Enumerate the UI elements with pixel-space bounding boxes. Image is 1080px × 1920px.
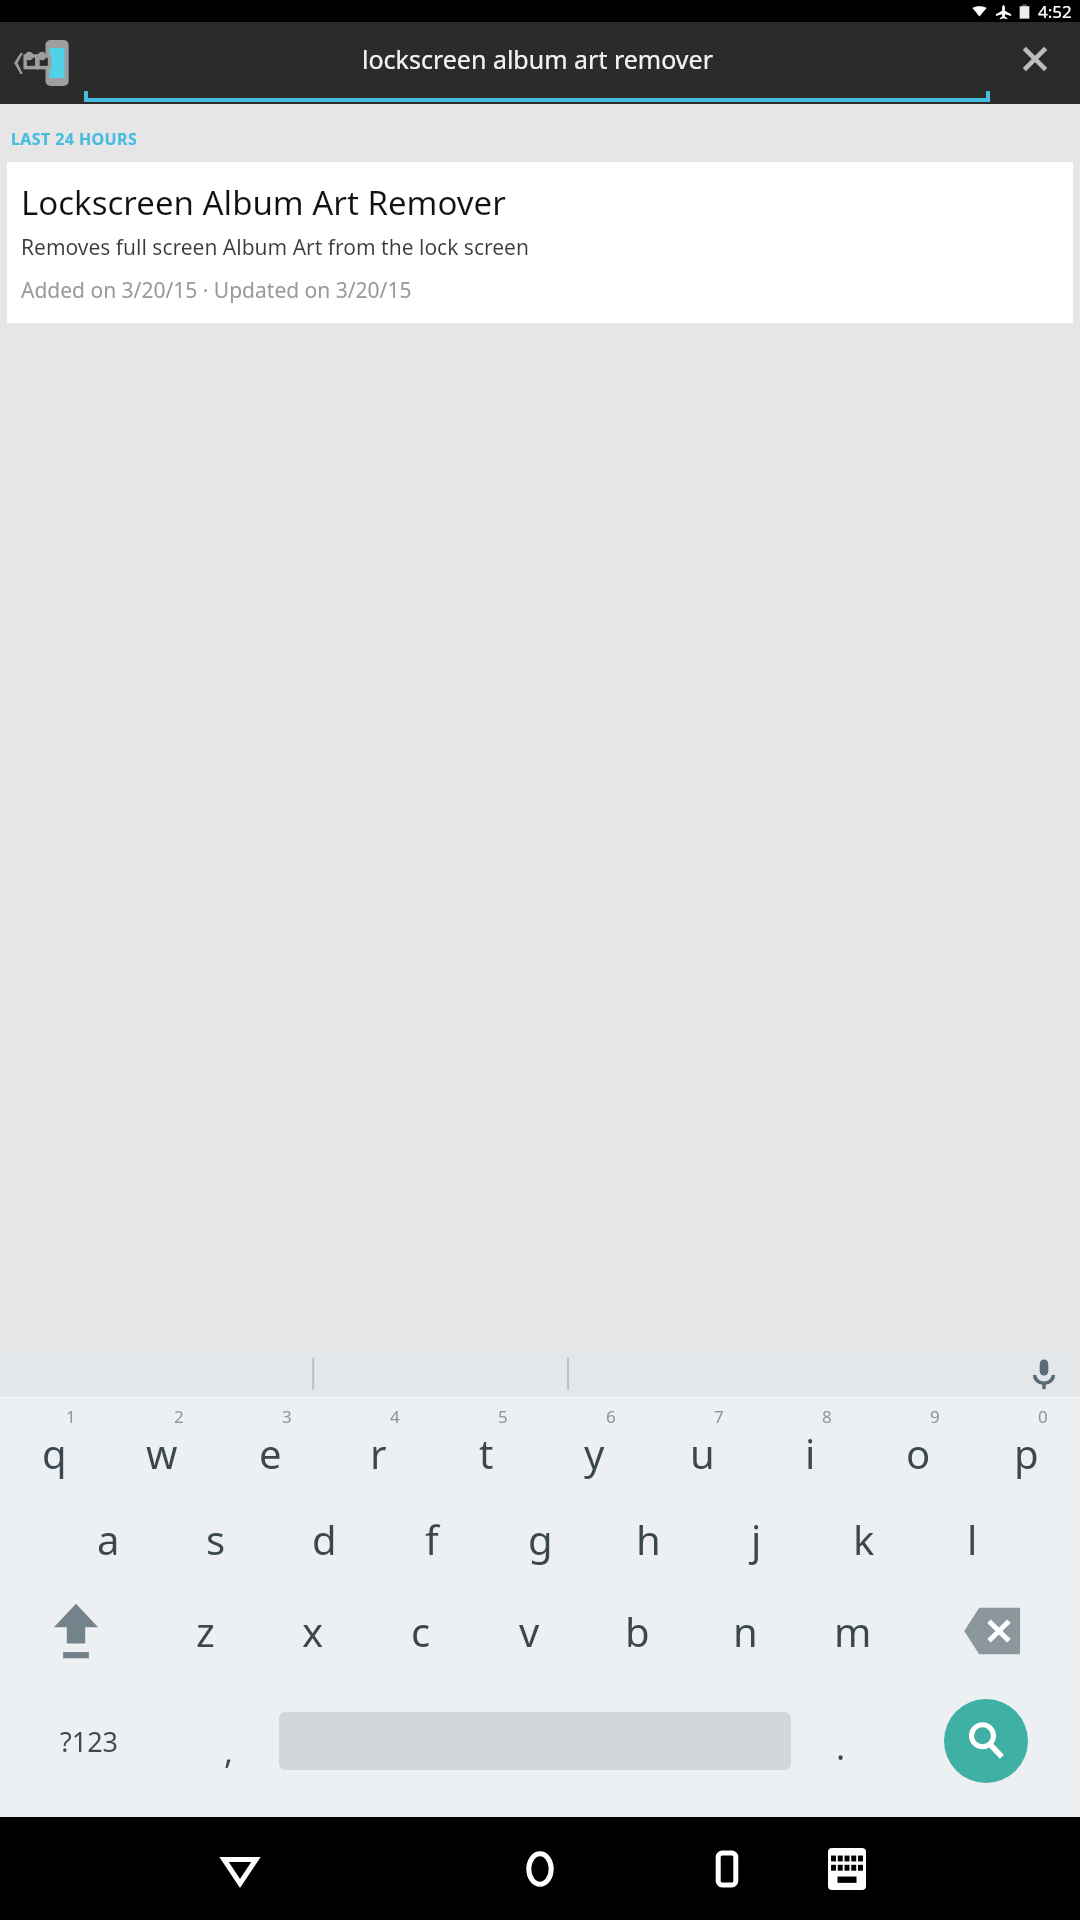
staticText: 7 [714, 1405, 724, 1428]
button[interactable]: Space [279, 1677, 791, 1805]
staticText: a [97, 1512, 120, 1566]
staticText: t [479, 1426, 494, 1480]
staticText: , [224, 1728, 234, 1774]
button[interactable]: x [259, 1585, 367, 1677]
staticText: p [1014, 1426, 1039, 1480]
button[interactable]: m [799, 1585, 907, 1677]
staticText: 6 [606, 1405, 616, 1428]
button[interactable]: Lockscreen Album Art Remover [7, 162, 1073, 323]
staticText: Removes full screen Album Art from the l… [21, 233, 529, 262]
button[interactable]: a [54, 1493, 162, 1585]
staticText: 8 [822, 1405, 832, 1428]
staticText: l [967, 1512, 978, 1566]
staticText: 3 [282, 1405, 292, 1428]
staticText: . [836, 1724, 846, 1770]
button[interactable]: 4 [324, 1398, 432, 1493]
button[interactable]: z [151, 1585, 259, 1677]
button[interactable]: ?123 [0, 1677, 179, 1805]
staticText: Lockscreen Album Art Remover [21, 180, 506, 225]
button[interactable]: 7 [648, 1398, 756, 1493]
button[interactable]: Hide keyboard [197, 1826, 283, 1912]
staticText: u [690, 1426, 715, 1480]
button[interactable]: j [702, 1493, 810, 1585]
button[interactable]: 5 [432, 1398, 540, 1493]
staticText: d [312, 1512, 337, 1566]
button[interactable]: l [918, 1493, 1026, 1585]
button[interactable]: b [583, 1585, 691, 1677]
button[interactable]: v [475, 1585, 583, 1677]
button[interactable]: Switch keyboard [810, 1832, 884, 1906]
button[interactable]: Voice input [1008, 1350, 1080, 1397]
staticText: 0 [1038, 1405, 1048, 1428]
staticText: 4 [390, 1405, 400, 1428]
button[interactable]: Delete [907, 1585, 1080, 1677]
staticText: r [370, 1426, 387, 1480]
staticText: i [805, 1426, 816, 1480]
staticText: e [259, 1426, 282, 1480]
button[interactable]: n [691, 1585, 799, 1677]
staticText: h [636, 1512, 661, 1566]
staticText: g [528, 1512, 553, 1566]
button[interactable]: c [367, 1585, 475, 1677]
button[interactable]: f [378, 1493, 486, 1585]
button[interactable]: g [486, 1493, 594, 1585]
staticText: 2 [174, 1405, 184, 1428]
button[interactable]: . [791, 1677, 891, 1805]
staticText: 4:52 [1038, 0, 1072, 22]
staticText: v [519, 1604, 540, 1658]
staticText: m [834, 1604, 872, 1658]
button[interactable]: s [162, 1493, 270, 1585]
button[interactable]: Clear query [990, 22, 1080, 104]
button[interactable]: Recents [684, 1826, 770, 1912]
staticText: s [206, 1512, 226, 1566]
staticText: lockscreen album art remover [362, 42, 713, 76]
staticText: n [733, 1604, 758, 1658]
staticText: b [625, 1604, 650, 1658]
button[interactable]: , [179, 1677, 279, 1805]
button[interactable]: 9 [864, 1398, 972, 1493]
staticText: w [146, 1426, 178, 1480]
button[interactable]: d [270, 1493, 378, 1585]
button[interactable]: 8 [756, 1398, 864, 1493]
button[interactable]: Up, Xposed Installer [0, 22, 84, 104]
staticText: o [906, 1426, 931, 1480]
staticText: 5 [498, 1405, 508, 1428]
button[interactable]: 6 [540, 1398, 648, 1493]
button[interactable]: 3 [216, 1398, 324, 1493]
staticText: z [196, 1604, 215, 1658]
button[interactable]: Search [891, 1677, 1080, 1805]
staticText: k [853, 1512, 875, 1566]
staticText: f [425, 1512, 439, 1566]
staticText: LAST 24 HOURS [11, 128, 138, 150]
button[interactable]: Home [497, 1826, 583, 1912]
staticText: ?123 [60, 1723, 119, 1760]
button[interactable]: 1 [0, 1398, 108, 1493]
button[interactable]: h [594, 1493, 702, 1585]
staticText: Added on 3/20/15 · Updated on 3/20/15 [21, 276, 412, 305]
staticText: j [751, 1512, 762, 1566]
button[interactable]: 2 [108, 1398, 216, 1493]
staticText: x [302, 1604, 324, 1658]
button[interactable]: k [810, 1493, 918, 1585]
staticText: 9 [930, 1405, 940, 1428]
staticText: c [411, 1604, 431, 1658]
staticText: 1 [66, 1405, 76, 1428]
staticText: q [42, 1426, 67, 1480]
staticText: y [584, 1426, 605, 1480]
button[interactable]: 0 [972, 1398, 1080, 1493]
button[interactable]: Shift [0, 1585, 151, 1677]
